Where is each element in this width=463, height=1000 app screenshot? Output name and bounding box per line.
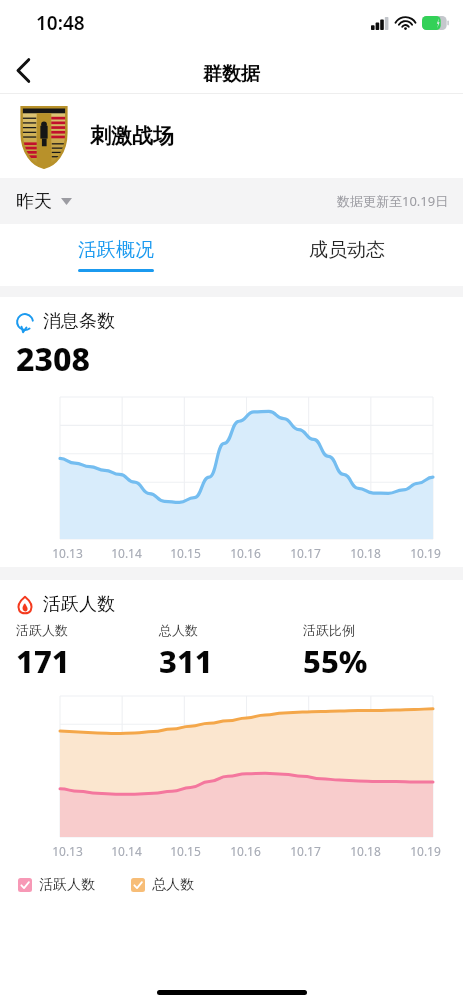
staticText: 10.14	[111, 843, 142, 859]
staticText: 10.19	[410, 545, 441, 561]
staticText: 活跃人数	[16, 622, 68, 638]
staticText: 10.16	[230, 545, 261, 561]
button[interactable]: 总人数	[131, 873, 194, 897]
staticText: 10.17	[290, 545, 321, 561]
button[interactable]: 刺激战场	[0, 94, 463, 178]
button[interactable]: 活跃概况	[64, 232, 168, 278]
button[interactable]: 活跃人数	[18, 873, 95, 897]
staticText: 2308	[16, 337, 90, 381]
staticText: 昨天	[16, 190, 52, 213]
staticText: 10.14	[111, 545, 142, 561]
staticText: 10.13	[52, 843, 83, 859]
staticText: 10.13	[52, 545, 83, 561]
staticText: 活跃概况	[78, 238, 154, 262]
staticText: 总人数	[159, 622, 198, 638]
staticText: 171	[16, 640, 70, 682]
button[interactable]: 成员动态	[295, 232, 399, 278]
staticText: 数据更新至10.19日	[337, 192, 449, 210]
button[interactable]: Back	[0, 47, 46, 93]
button[interactable]: 昨天	[14, 184, 74, 219]
staticText: 10.18	[350, 843, 381, 859]
staticText: 成员动态	[309, 238, 385, 262]
staticText: 55%	[303, 640, 368, 682]
staticText: 10.17	[290, 843, 321, 859]
staticText: 10:48	[36, 10, 85, 36]
staticText: 10.18	[350, 545, 381, 561]
staticText: 总人数	[152, 876, 194, 894]
staticText: 群数据	[203, 62, 260, 86]
staticText: 10.15	[170, 843, 201, 859]
staticText: 刺激战场	[90, 123, 174, 149]
staticText: 消息条数	[43, 310, 115, 333]
staticText: 311	[159, 640, 213, 682]
staticText: 10.16	[230, 843, 261, 859]
staticText: 10.19	[410, 843, 441, 859]
staticText: 10.15	[170, 545, 201, 561]
staticText: 活跃人数	[43, 593, 115, 616]
staticText: 活跃人数	[39, 876, 95, 894]
staticText: 活跃比例	[303, 622, 355, 638]
